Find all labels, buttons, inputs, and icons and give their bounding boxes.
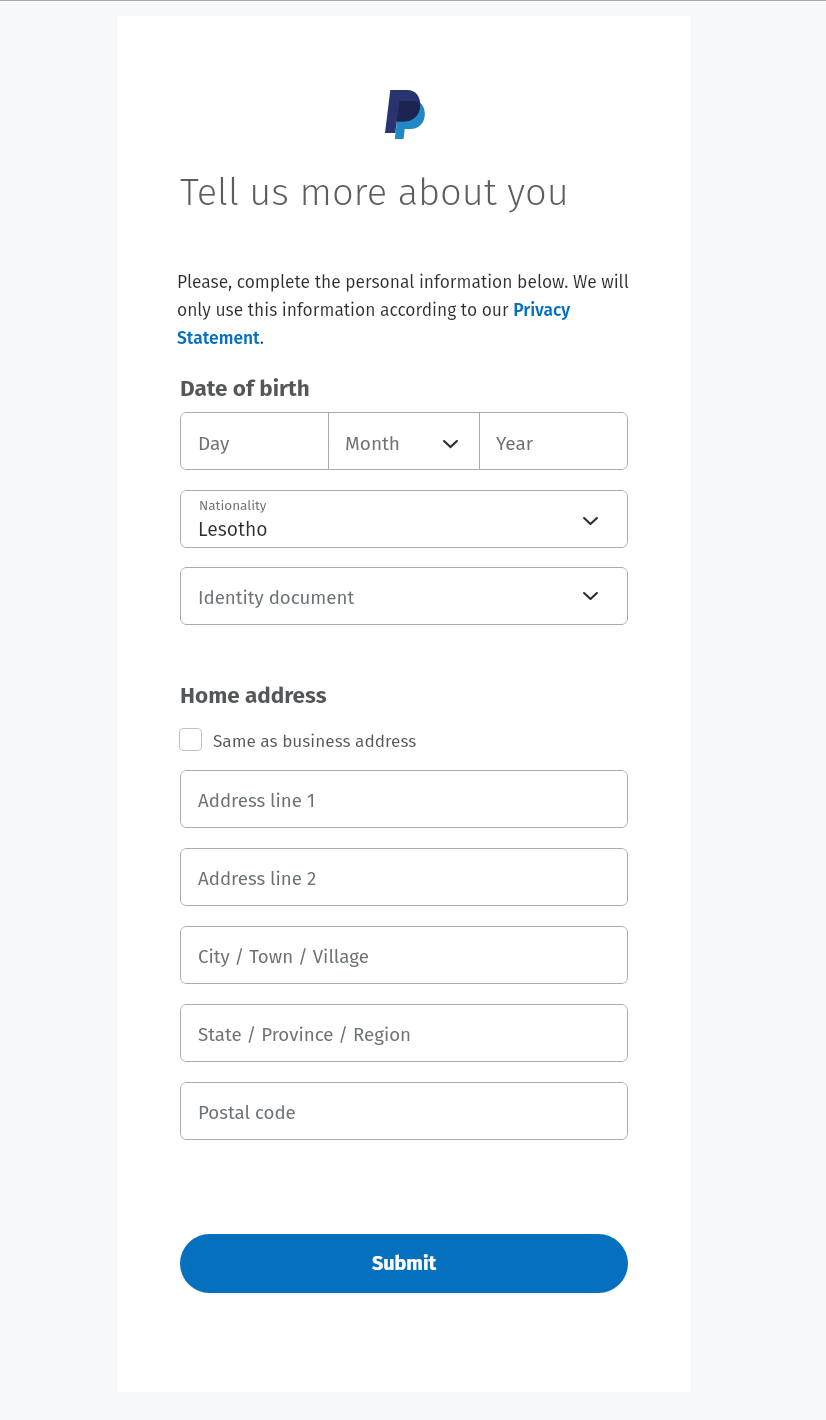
other: Open the Identity document list [583, 592, 598, 600]
button[interactable]: Day [180, 412, 328, 470]
staticText: Identity document [198, 587, 355, 609]
button[interactable]: Identity document [180, 567, 628, 625]
staticText: Lesotho [198, 518, 268, 541]
button[interactable]: Please, complete the personal informatio… [177, 272, 632, 348]
other: Select nationality [583, 517, 598, 525]
staticText: Same as business address [213, 731, 417, 752]
other: Select month [443, 440, 458, 448]
button[interactable]: Submit [180, 1234, 628, 1293]
button[interactable]: Same as business address [179, 728, 415, 751]
staticText: Please, complete the personal informatio… [177, 272, 632, 348]
staticText: Address line 1 [198, 790, 316, 812]
staticText: Postal code [198, 1102, 296, 1124]
staticText: Month [345, 432, 401, 455]
button[interactable]: Postal code [180, 1082, 628, 1140]
staticText: Home address [180, 682, 327, 709]
button[interactable]: Address line 2 [180, 848, 628, 906]
staticText: Nationality [199, 497, 267, 513]
other: PayPal [385, 90, 425, 139]
button[interactable]: Nationality [180, 490, 628, 548]
staticText: Address line 2 [198, 868, 317, 890]
button[interactable]: State / Province / Region [180, 1004, 628, 1062]
staticText: Submit [372, 1252, 437, 1276]
button[interactable]: Address line 1 [180, 770, 628, 828]
button[interactable]: Year [480, 412, 518, 470]
staticText: State / Province / Region [198, 1024, 412, 1046]
button[interactable]: City / Town / Village [180, 926, 628, 984]
staticText: Date of birth [180, 375, 310, 402]
staticText: City / Town / Village [198, 946, 369, 968]
button[interactable]: Month [329, 412, 479, 470]
staticText: Tell us more about you [180, 169, 569, 215]
staticText: Year [496, 432, 534, 455]
staticText: Day [198, 432, 230, 455]
